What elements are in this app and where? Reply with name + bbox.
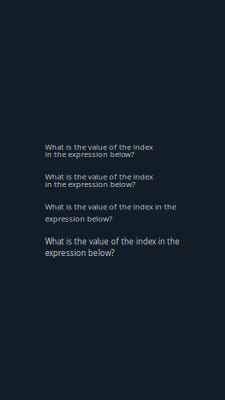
staticText: What is the value of the index in the ex… [45,142,153,159]
staticText: expression below? [45,213,112,224]
staticText: What is the value of the index in the [45,201,176,212]
staticText: expression below? [45,247,114,258]
staticText: What is the value of the index in the [45,236,180,247]
staticText: What is the value of the index in the ex… [45,171,153,189]
